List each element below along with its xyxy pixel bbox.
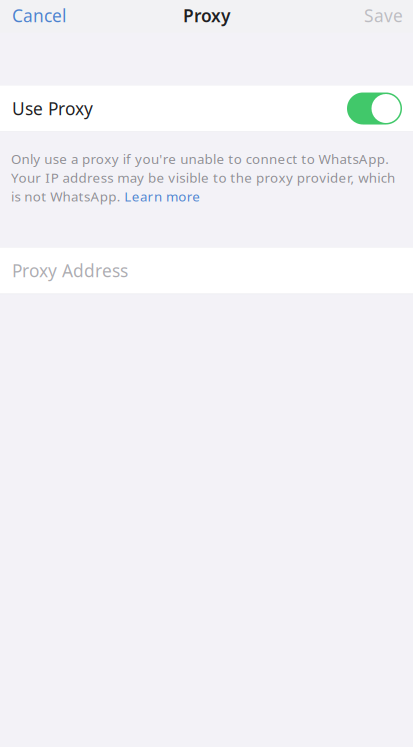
staticText: Cancel	[12, 4, 66, 27]
staticText: Only use a proxy if you're unable to con…	[11, 150, 389, 168]
button[interactable]: Save	[352, 0, 413, 32]
button[interactable]: Learn more	[124, 187, 200, 205]
button[interactable]: Proxy Address	[0, 248, 413, 294]
staticText: Use Proxy	[12, 97, 93, 120]
staticText: Proxy Address	[12, 259, 128, 282]
staticText: Save	[364, 4, 403, 27]
staticText: Learn more	[124, 187, 200, 205]
staticText: Proxy	[183, 4, 230, 27]
button[interactable]: Cancel	[0, 0, 78, 32]
button[interactable]: Use Proxy	[0, 85, 413, 131]
staticText: Your IP address may be visible to the pr…	[11, 169, 395, 186]
staticText: is not WhatsApp.	[11, 187, 124, 205]
